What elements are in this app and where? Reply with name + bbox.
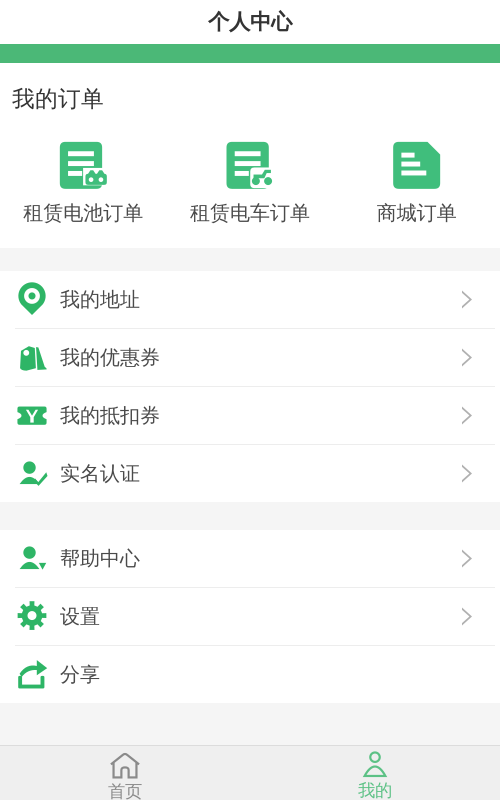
button[interactable]: 租赁电车订单 <box>167 142 333 225</box>
button[interactable]: 我的地址 <box>0 271 500 328</box>
staticText: 帮助中心 <box>60 546 140 571</box>
staticText: 我的订单 <box>12 85 104 113</box>
button[interactable]: 实名认证 <box>0 445 500 502</box>
staticText: 我的 <box>358 780 392 800</box>
staticText: 个人中心 <box>208 9 292 35</box>
staticText: 我的抵扣券 <box>60 403 160 428</box>
button[interactable]: 商城订单 <box>333 142 500 225</box>
staticText: 实名认证 <box>60 461 140 486</box>
staticText: 首页 <box>108 781 142 800</box>
button[interactable]: 租赁电池订单 <box>0 142 167 225</box>
staticText: 我的优惠券 <box>60 345 160 370</box>
button[interactable]: 帮助中心 <box>0 530 500 587</box>
button[interactable]: 我的抵扣券 <box>0 387 500 444</box>
staticText: 分享 <box>60 662 100 687</box>
staticText: 商城订单 <box>377 201 457 225</box>
button[interactable]: 设置 <box>0 588 500 645</box>
staticText: 租赁电池订单 <box>23 201 143 225</box>
button[interactable]: 首页 <box>0 744 250 800</box>
button[interactable]: 分享 <box>0 646 500 703</box>
button[interactable]: 我的 <box>250 745 500 800</box>
staticText: 设置 <box>60 604 100 629</box>
button[interactable]: 我的优惠券 <box>0 329 500 386</box>
staticText: 我的地址 <box>60 287 140 312</box>
staticText: 租赁电车订单 <box>190 201 310 225</box>
